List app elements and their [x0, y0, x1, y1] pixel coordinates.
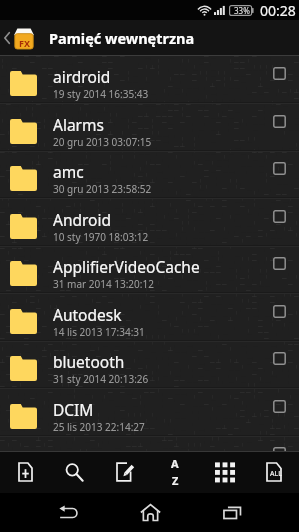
staticText: Autodesk — [53, 304, 122, 325]
button[interactable]: New file — [1, 451, 50, 493]
button[interactable]: Back — [27, 493, 109, 532]
button[interactable]: ApplifierVideoCache — [0, 246, 299, 294]
button[interactable]: Back — [0, 20, 14, 56]
button[interactable]: Select all — [249, 451, 298, 493]
staticText: 25 lis 2013 22:14:27 — [53, 420, 145, 434]
button[interactable]: Search — [50, 451, 99, 493]
button[interactable]: bluetooth — [0, 341, 299, 389]
staticText: Pamięć wewnętrzna — [49, 28, 195, 48]
staticText: bluetooth — [53, 351, 125, 372]
staticText: Alarms — [53, 114, 104, 135]
button[interactable]: Download — [0, 436, 299, 451]
staticText: 33% — [234, 5, 250, 16]
staticText: 19 sty 2014 16:35:43 — [53, 87, 149, 101]
button[interactable]: Alarms — [0, 104, 299, 152]
staticText: airdroid — [53, 66, 111, 87]
button[interactable]: Edit — [100, 451, 149, 493]
staticText: 00:28 — [260, 1, 296, 20]
staticText: DCIM — [53, 399, 94, 420]
staticText: ALL — [270, 469, 282, 479]
staticText: amc — [53, 161, 84, 182]
staticText: 14 lis 2013 17:34:31 — [53, 325, 145, 339]
button[interactable]: Sort A to Z — [150, 451, 199, 493]
staticText: 30 gru 2013 23:58:52 — [53, 182, 152, 196]
button[interactable]: Android — [0, 199, 299, 247]
staticText: 31 mar 2014 13:20:12 — [53, 277, 154, 291]
button[interactable]: Autodesk — [0, 294, 299, 342]
button[interactable]: Recent apps — [191, 493, 273, 532]
staticText: Android — [53, 209, 112, 230]
button[interactable]: DCIM — [0, 389, 299, 437]
staticText: 31 sty 2014 20:13:26 — [53, 372, 149, 386]
button[interactable]: Grid view — [200, 451, 249, 493]
staticText: 10 sty 1970 18:03:12 — [53, 230, 149, 244]
button[interactable]: Home — [109, 493, 191, 532]
button[interactable]: amc — [0, 151, 299, 199]
staticText: ApplifierVideoCache — [53, 256, 200, 277]
staticText: FX — [19, 37, 30, 49]
staticText: A — [171, 456, 179, 471]
staticText: 20 gru 2013 03:07:15 — [53, 135, 152, 149]
button[interactable]: airdroid — [0, 56, 299, 104]
staticText: Z — [172, 473, 179, 488]
